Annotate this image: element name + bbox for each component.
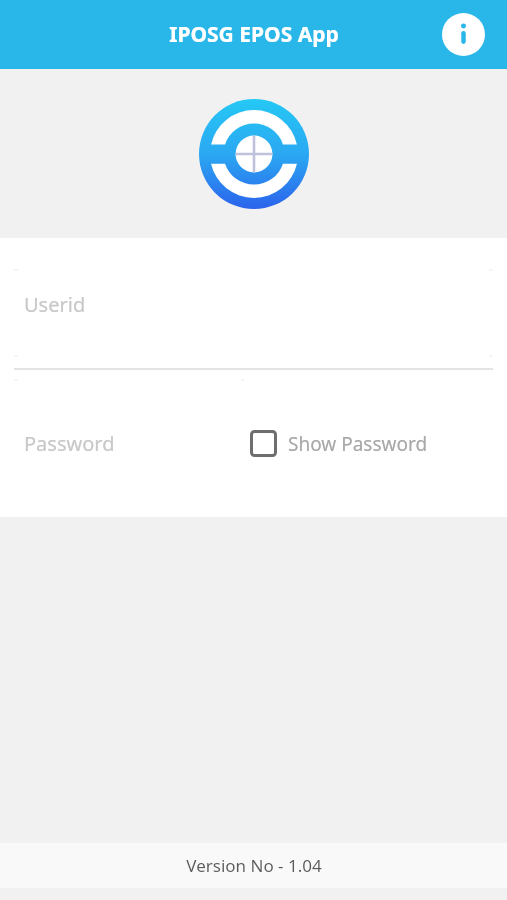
button[interactable]: Password: [24, 430, 115, 457]
button[interactable]: Show Password: [250, 430, 428, 457]
staticText: Userid: [24, 291, 86, 318]
button[interactable]: Info: [442, 13, 485, 56]
staticText: Show Password: [288, 431, 428, 457]
staticText: Version No - 1.04: [186, 854, 322, 877]
button[interactable]: Userid: [0, 238, 507, 370]
staticText: IPOSG EPOS App: [169, 20, 339, 49]
